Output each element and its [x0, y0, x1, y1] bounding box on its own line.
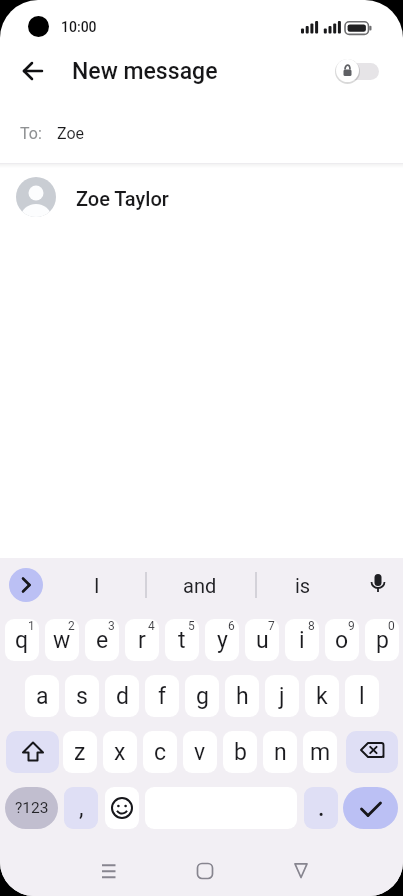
- staticText: ,: [79, 795, 84, 822]
- staticText: x: [114, 739, 126, 766]
- staticText: 4: [148, 619, 155, 633]
- staticText: o: [335, 627, 349, 654]
- button[interactable]: ?123: [5, 787, 58, 829]
- button[interactable]: z: [63, 731, 97, 773]
- button[interactable]: [346, 731, 398, 773]
- staticText: 1: [28, 619, 35, 633]
- button[interactable]: r: [125, 619, 159, 661]
- staticText: h: [236, 683, 249, 710]
- staticText: c: [154, 739, 167, 766]
- button[interactable]: k: [305, 675, 339, 717]
- button[interactable]: [105, 787, 139, 829]
- button[interactable]: n: [263, 731, 297, 773]
- button[interactable]: l: [345, 675, 379, 717]
- staticText: k: [316, 683, 328, 710]
- staticText: j: [279, 683, 285, 710]
- staticText: is: [295, 574, 311, 597]
- staticText: g: [196, 683, 209, 710]
- staticText: .: [318, 795, 325, 822]
- button[interactable]: p: [365, 619, 399, 661]
- staticText: m: [310, 739, 331, 766]
- staticText: l: [359, 683, 365, 710]
- staticText: a: [36, 683, 49, 710]
- staticText: Zoe: [57, 124, 85, 143]
- button[interactable]: [331, 55, 385, 87]
- staticText: I: [94, 574, 100, 597]
- staticText: 8: [308, 619, 315, 633]
- button[interactable]: To:: [0, 104, 403, 163]
- button[interactable]: j: [265, 675, 299, 717]
- button[interactable]: v: [183, 731, 217, 773]
- button[interactable]: u: [245, 619, 279, 661]
- button[interactable]: c: [143, 731, 177, 773]
- staticText: 10:00: [61, 19, 97, 35]
- button[interactable]: and: [155, 570, 245, 600]
- staticText: b: [234, 739, 247, 766]
- staticText: 0: [388, 619, 395, 633]
- staticText: w: [53, 627, 71, 654]
- button[interactable]: w: [45, 619, 79, 661]
- staticText: r: [138, 627, 146, 654]
- button[interactable]: t: [165, 619, 199, 661]
- staticText: n: [274, 739, 287, 766]
- staticText: New message: [72, 58, 218, 85]
- staticText: 5: [188, 619, 195, 633]
- staticText: e: [96, 627, 109, 654]
- button[interactable]: i: [285, 619, 319, 661]
- staticText: 6: [228, 619, 235, 633]
- staticText: 3: [108, 619, 115, 633]
- button[interactable]: [88, 851, 130, 889]
- button[interactable]: [9, 568, 43, 602]
- button[interactable]: x: [103, 731, 137, 773]
- staticText: i: [299, 627, 305, 654]
- staticText: u: [256, 627, 269, 654]
- button[interactable]: .: [304, 787, 338, 829]
- staticText: 9: [348, 619, 355, 633]
- button[interactable]: o: [325, 619, 359, 661]
- staticText: t: [178, 627, 186, 654]
- button[interactable]: [280, 851, 322, 889]
- staticText: q: [15, 627, 29, 654]
- staticText: and: [183, 574, 217, 597]
- staticText: y: [217, 627, 228, 654]
- staticText: f: [158, 683, 166, 710]
- staticText: 2: [68, 619, 75, 633]
- staticText: s: [76, 683, 88, 710]
- button[interactable]: e: [85, 619, 119, 661]
- staticText: ?123: [15, 799, 49, 817]
- button[interactable]: b: [223, 731, 257, 773]
- button[interactable]: a: [25, 675, 59, 717]
- button[interactable]: [361, 568, 395, 602]
- button[interactable]: Zoe Taylor: [0, 168, 403, 228]
- staticText: v: [194, 739, 206, 766]
- button[interactable]: [184, 851, 226, 889]
- button[interactable]: is: [258, 570, 348, 600]
- button[interactable]: s: [65, 675, 99, 717]
- button[interactable]: q: [5, 619, 39, 661]
- button[interactable]: [6, 731, 59, 773]
- button[interactable]: m: [303, 731, 337, 773]
- staticText: To:: [20, 124, 42, 143]
- staticText: d: [116, 683, 129, 710]
- staticText: z: [74, 739, 86, 766]
- button[interactable]: h: [225, 675, 259, 717]
- button[interactable]: ,: [64, 787, 98, 829]
- button[interactable]: f: [145, 675, 179, 717]
- button[interactable]: g: [185, 675, 219, 717]
- button[interactable]: I: [52, 570, 142, 600]
- staticText: 7: [268, 619, 275, 633]
- staticText: Zoe Taylor: [76, 187, 169, 210]
- button[interactable]: d: [105, 675, 139, 717]
- button[interactable]: [343, 787, 398, 829]
- staticText: p: [376, 627, 389, 654]
- button[interactable]: y: [205, 619, 239, 661]
- button[interactable]: [13, 51, 53, 91]
